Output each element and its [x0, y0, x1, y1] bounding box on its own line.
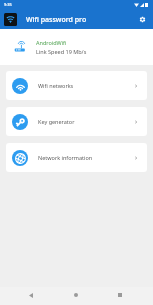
staticText: Network information	[38, 154, 93, 161]
staticText: Wifi networks	[38, 82, 74, 89]
staticText: Wifi password pro	[26, 15, 87, 25]
button[interactable]: Key generator	[6, 107, 147, 136]
button[interactable]: Back	[23, 287, 39, 303]
button[interactable]: Network information	[6, 143, 147, 172]
button[interactable]: Home	[68, 287, 84, 303]
button[interactable]: Settings	[134, 11, 150, 27]
button[interactable]: Wifi networks	[6, 71, 147, 100]
staticText: AndroidWifi	[36, 39, 67, 46]
button[interactable]: App icon	[4, 13, 17, 26]
staticText: 9:35	[4, 2, 12, 7]
staticText: Key generator	[38, 118, 75, 125]
staticText: Link Speed 19 Mb/s	[36, 48, 87, 55]
button[interactable]: Recents	[112, 287, 128, 303]
